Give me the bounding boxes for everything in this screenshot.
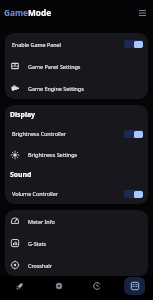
button[interactable]: Menu: [136, 6, 149, 19]
button[interactable]: Panel: [115, 276, 153, 295]
button[interactable]: Brightness Controller: [5, 123, 148, 144]
button[interactable]: History: [77, 276, 115, 295]
staticText: Game Engine Settings: [28, 85, 84, 92]
button[interactable]: Volume Controller: [5, 183, 148, 204]
staticText: Enable Game Panel: [12, 41, 61, 48]
staticText: G-Stats: [28, 240, 47, 247]
button[interactable]: Toggle: [124, 130, 143, 138]
staticText: Brightness Controller: [12, 130, 67, 137]
staticText: Meter Info: [28, 218, 55, 225]
button[interactable]: Brightness Settings: [5, 144, 148, 165]
button[interactable]: Boost: [0, 276, 39, 295]
button[interactable]: Game Engine Settings: [5, 77, 148, 99]
staticText: GameMode: [4, 7, 52, 18]
button[interactable]: Game Panel Settings: [5, 55, 148, 77]
button[interactable]: Crosshair: [5, 254, 148, 276]
button[interactable]: Meter Info: [5, 210, 148, 232]
staticText: Sound: [10, 170, 32, 179]
button[interactable]: Toggle: [124, 40, 143, 48]
button[interactable]: Tools: [39, 276, 77, 295]
button[interactable]: G-Stats: [5, 232, 148, 254]
button[interactable]: Toggle: [124, 190, 143, 198]
button[interactable]: Enable Game Panel: [5, 33, 148, 55]
staticText: Crosshair: [28, 262, 52, 269]
staticText: Volume Controller: [12, 190, 58, 197]
staticText: Display: [10, 110, 36, 119]
staticText: Game Panel Settings: [28, 63, 81, 70]
staticText: Brightness Settings: [28, 151, 78, 158]
